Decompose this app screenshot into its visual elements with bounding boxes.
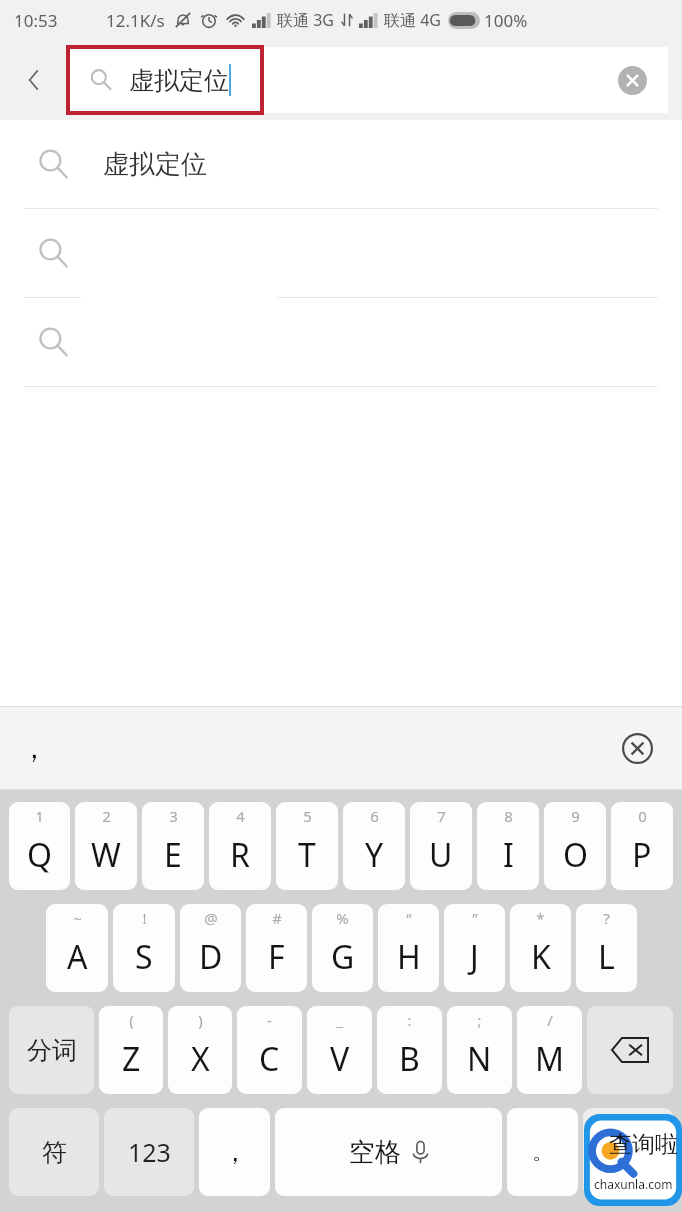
button[interactable]: #	[246, 904, 307, 992]
staticText: S	[135, 935, 153, 979]
button[interactable]: “	[378, 904, 439, 992]
button[interactable]: ;	[447, 1006, 512, 1094]
staticText: ;	[477, 1010, 482, 1030]
staticText: U	[429, 833, 453, 877]
staticText: 虚拟定位	[129, 65, 229, 96]
button[interactable]: Backspace	[587, 1006, 673, 1094]
staticText: ~	[73, 908, 82, 928]
staticText: #	[272, 908, 282, 928]
staticText: :	[407, 1010, 412, 1030]
staticText: 8	[504, 806, 513, 826]
staticText: !	[142, 908, 147, 928]
staticText: X	[191, 1037, 210, 1081]
staticText: W	[91, 833, 121, 877]
staticText: @	[204, 908, 218, 928]
staticText: Z	[122, 1037, 141, 1081]
staticText: )	[198, 1010, 203, 1030]
staticText: J	[470, 935, 479, 979]
button[interactable]: 123	[104, 1108, 194, 1196]
staticText: 分词	[27, 1035, 77, 1066]
button[interactable]: 3	[142, 802, 204, 890]
staticText: *	[536, 908, 545, 928]
button[interactable]: 空格	[275, 1108, 502, 1196]
button[interactable]: -	[237, 1006, 302, 1094]
button[interactable]: Back	[0, 40, 68, 120]
button[interactable]: (	[99, 1006, 163, 1094]
button[interactable]: 2	[75, 802, 137, 890]
staticText: (	[129, 1010, 134, 1030]
staticText: ，	[222, 1136, 248, 1169]
button[interactable]: 5	[276, 802, 338, 890]
staticText: 123	[128, 1135, 171, 1169]
button[interactable]: ~	[46, 904, 108, 992]
staticText: K	[531, 935, 551, 979]
staticText: 0	[638, 806, 647, 826]
button[interactable]: ”	[444, 904, 505, 992]
button[interactable]: Hide keyboard	[614, 725, 660, 771]
staticText: L	[598, 935, 615, 979]
staticText: R	[230, 833, 250, 877]
staticText: 。	[532, 1138, 554, 1166]
button[interactable]: ，	[20, 731, 48, 766]
staticText: D	[199, 935, 223, 979]
staticText: P	[632, 833, 652, 877]
staticText: E	[164, 833, 182, 877]
staticText: M	[535, 1037, 565, 1081]
button[interactable]: 虚拟定位	[68, 47, 668, 113]
staticText: N	[467, 1037, 492, 1081]
staticText: 6	[370, 806, 379, 826]
button[interactable]: 9	[544, 802, 606, 890]
button[interactable]: 4	[209, 802, 271, 890]
staticText: H	[397, 935, 421, 979]
button[interactable]: Clear text	[610, 58, 654, 102]
button[interactable]: 虚拟定位	[0, 120, 682, 208]
button[interactable]: !	[113, 904, 175, 992]
staticText: 查询啦	[609, 1130, 678, 1159]
staticText: -	[267, 1010, 272, 1030]
button[interactable]: 0	[611, 802, 673, 890]
button[interactable]: 分词	[9, 1006, 94, 1094]
button[interactable]: :	[377, 1006, 442, 1094]
button[interactable]: /	[517, 1006, 582, 1094]
button[interactable]: 。	[507, 1108, 578, 1196]
button[interactable]: )	[168, 1006, 232, 1094]
button[interactable]: 1	[9, 802, 70, 890]
button[interactable]: 6	[343, 802, 405, 890]
staticText: 5	[303, 806, 312, 826]
staticText: 4	[236, 806, 245, 826]
staticText: V	[330, 1037, 350, 1081]
staticText: A	[67, 935, 88, 979]
staticText: Y	[365, 833, 384, 877]
staticText: ?	[603, 908, 610, 928]
button[interactable]: Enter	[583, 1108, 673, 1196]
staticText: 联通 4G	[384, 9, 441, 31]
staticText: 3	[169, 806, 178, 826]
staticText: 符	[42, 1137, 67, 1168]
button[interactable]: @	[180, 904, 241, 992]
staticText: ”	[472, 908, 478, 928]
staticText: I	[503, 833, 514, 877]
staticText: 联通 3G	[277, 9, 334, 31]
staticText: F	[268, 935, 285, 979]
button[interactable]	[0, 298, 682, 386]
staticText: /	[547, 1010, 553, 1030]
button[interactable]	[0, 209, 682, 297]
staticText: 9	[571, 806, 580, 826]
staticText: T	[298, 833, 316, 877]
button[interactable]: 7	[410, 802, 472, 890]
button[interactable]: *	[510, 904, 571, 992]
staticText: 7	[437, 806, 446, 826]
button[interactable]: _	[307, 1006, 372, 1094]
staticText: 虚拟定位	[103, 148, 207, 181]
staticText: chaxunla.com	[594, 1176, 673, 1192]
staticText: 空格	[349, 1136, 401, 1169]
staticText: %	[336, 908, 349, 928]
button[interactable]: 8	[477, 802, 539, 890]
button[interactable]: ?	[576, 904, 637, 992]
staticText: 12.1K/s	[106, 9, 165, 32]
button[interactable]: ，	[199, 1108, 270, 1196]
staticText: C	[259, 1037, 280, 1081]
button[interactable]: 符	[9, 1108, 99, 1196]
button[interactable]: %	[312, 904, 373, 992]
staticText: 100%	[484, 9, 528, 32]
